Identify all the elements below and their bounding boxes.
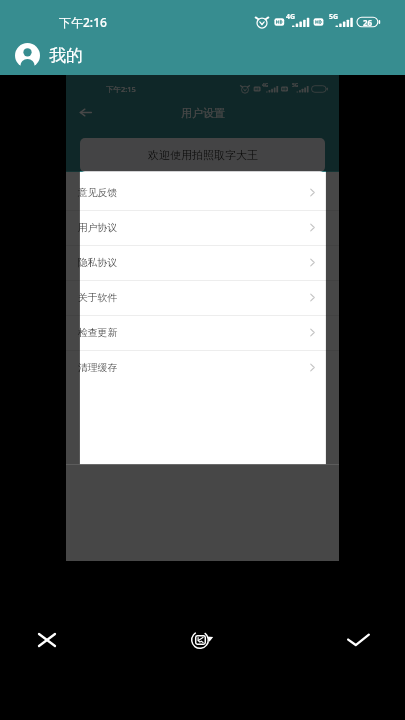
button[interactable]: 关于软件 xyxy=(66,280,339,315)
staticText: 隐私协议 xyxy=(78,257,118,269)
staticText: 关于软件 xyxy=(78,292,118,304)
staticText: 下午2:15 xyxy=(106,84,136,94)
button[interactable]: 意见反馈 xyxy=(66,175,339,210)
staticText: 下午2:16 xyxy=(59,14,107,30)
staticText: 4G xyxy=(286,12,296,22)
staticText: 4G xyxy=(262,82,269,89)
button[interactable]: Cancel xyxy=(21,614,73,666)
button[interactable]: 清理缓存 xyxy=(66,350,339,385)
staticText: 清理缓存 xyxy=(78,362,118,374)
button[interactable]: Confirm xyxy=(332,614,384,666)
staticText: 我的 xyxy=(49,45,83,66)
staticText: 欢迎使用拍照取字大王 xyxy=(148,148,258,162)
staticText: 5G xyxy=(292,82,299,89)
staticText: 意见反馈 xyxy=(78,187,118,199)
button[interactable]: 隐私协议 xyxy=(66,245,339,280)
staticText: 26 xyxy=(363,17,373,28)
button[interactable]: Rotate xyxy=(176,614,228,666)
staticText: 检查更新 xyxy=(78,327,118,339)
staticText: 用户设置 xyxy=(181,106,225,120)
button[interactable]: 用户协议 xyxy=(66,210,339,245)
staticText: 用户协议 xyxy=(78,222,118,234)
staticText: 5G xyxy=(329,12,339,22)
button[interactable]: 我的 xyxy=(0,37,83,73)
button[interactable]: 检查更新 xyxy=(66,315,339,350)
